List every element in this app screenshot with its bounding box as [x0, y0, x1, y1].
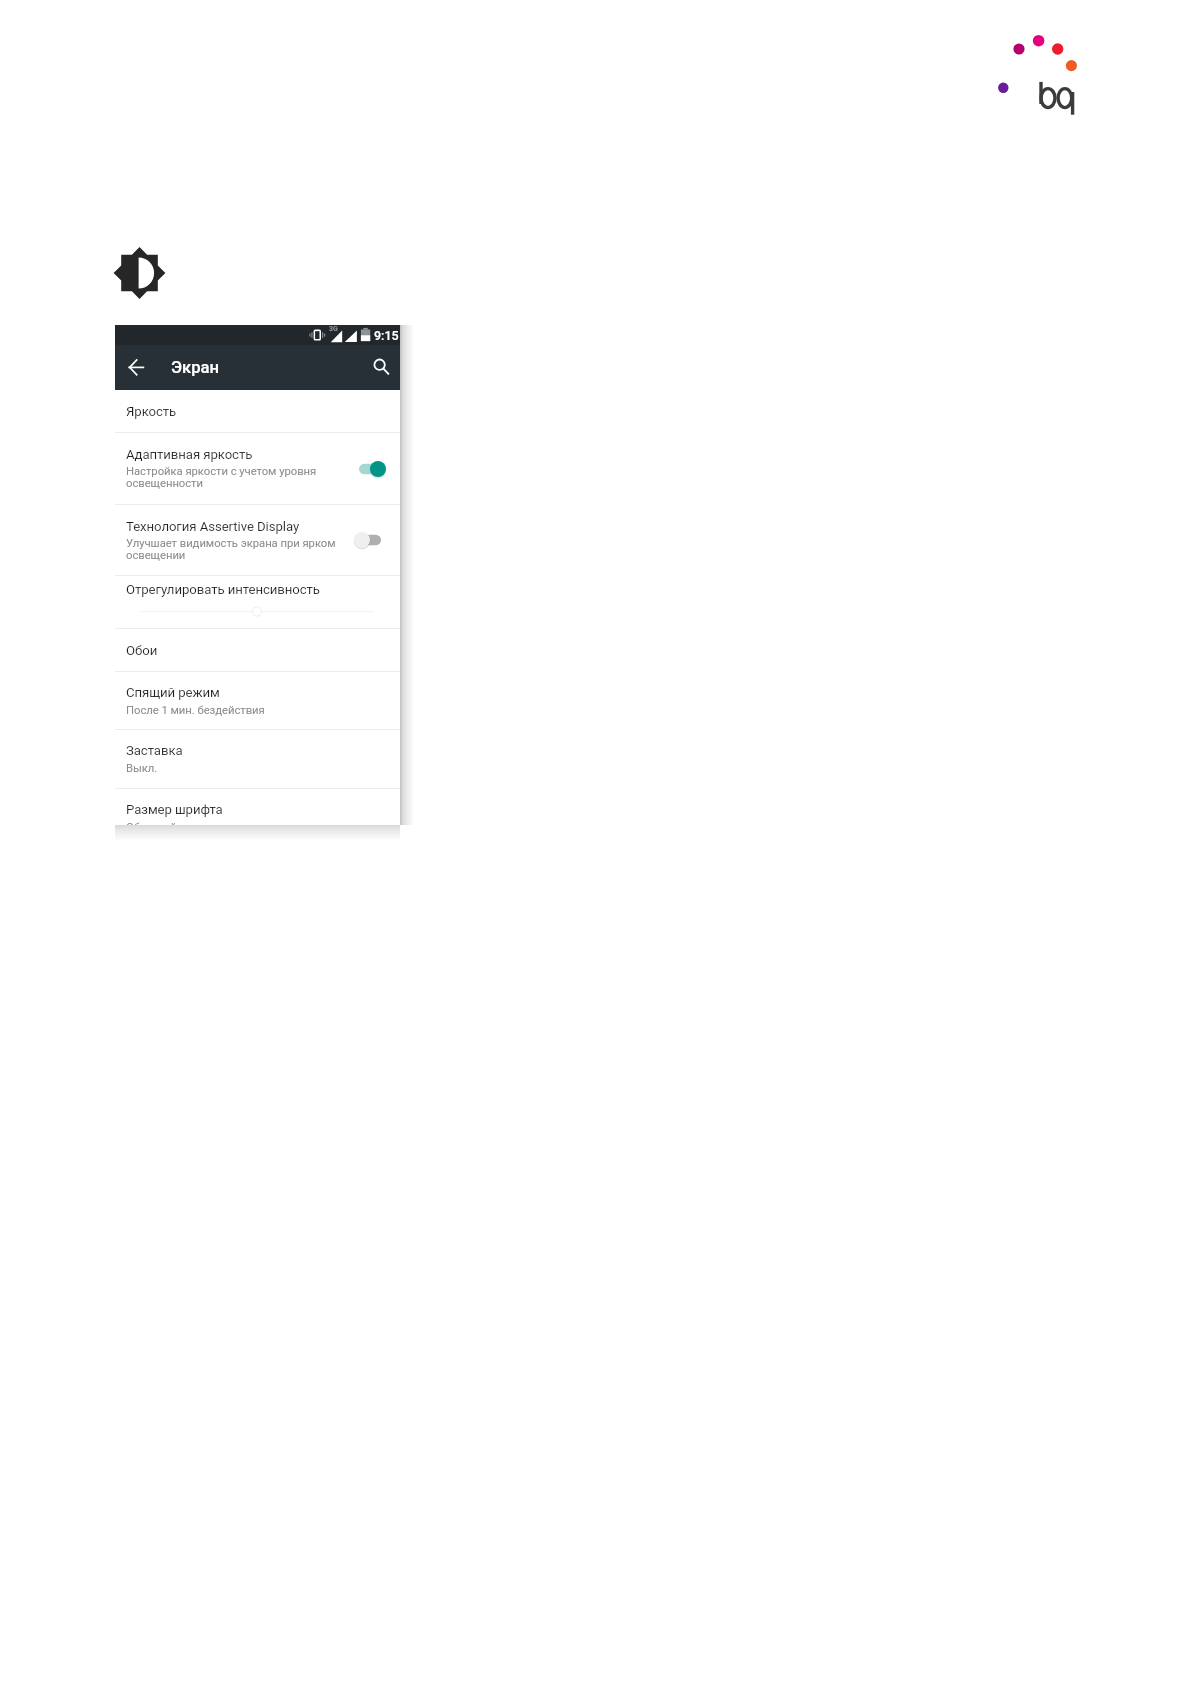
staticText: 9:15: [374, 328, 399, 343]
staticText: Спящий режим: [126, 685, 220, 700]
staticText: Обои: [126, 643, 158, 658]
staticText: 3G: [329, 325, 338, 333]
button[interactable]: Технология Assertive Display: [115, 505, 400, 575]
button[interactable]: Размер шрифта: [115, 789, 400, 825]
staticText: После 1 мин. бездействия: [126, 704, 265, 717]
button[interactable]: Яркость: [115, 390, 400, 432]
button[interactable]: Заставка: [115, 730, 400, 788]
button[interactable]: Search: [367, 352, 397, 382]
staticText: Выкл.: [126, 762, 158, 775]
button[interactable]: Адаптивная яркость: [115, 433, 400, 504]
button[interactable]: Отрегулировать интенсивность: [115, 576, 400, 628]
button[interactable]: Switch, on: [349, 454, 393, 484]
button[interactable]: Спящий режим: [115, 672, 400, 729]
button[interactable]: Switch, off: [349, 525, 393, 555]
staticText: Адаптивная яркость: [126, 447, 253, 462]
button[interactable]: Back: [121, 352, 151, 382]
button[interactable]: Обои: [115, 629, 400, 671]
staticText: Размер шрифта: [126, 802, 223, 817]
staticText: Яркость: [126, 404, 177, 419]
staticText: Улучшает видимость экрана при ярком осве…: [126, 537, 336, 562]
staticText: Отрегулировать интенсивность: [126, 582, 320, 597]
staticText: Экран: [171, 358, 220, 377]
staticText: Обычный: [126, 821, 177, 825]
staticText: Технология Assertive Display: [126, 519, 300, 534]
staticText: Настройка яркости с учетом уровня освеще…: [126, 465, 317, 490]
staticText: Заставка: [126, 743, 183, 758]
